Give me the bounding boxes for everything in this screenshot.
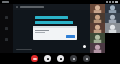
- button[interactable]: Microphone: [44, 55, 51, 62]
- button[interactable]: Participant 1: [90, 4, 105, 13]
- button[interactable]: Confirm: [33, 26, 77, 40]
- button[interactable]: Participant 3: [90, 13, 105, 23]
- button[interactable]: Camera: [57, 55, 64, 62]
- button[interactable]: More options: [83, 55, 90, 62]
- button[interactable]: Participant 4: [105, 13, 120, 23]
- button[interactable]: Share screen: [70, 55, 77, 62]
- button[interactable]: Confirm: [66, 35, 75, 38]
- button[interactable]: Participant 5: [90, 23, 105, 33]
- button[interactable]: Participant 9: [90, 43, 105, 53]
- button[interactable]: End call: [31, 55, 38, 62]
- button[interactable]: Participant 2: [105, 4, 120, 13]
- button[interactable]: Participant 6: [105, 23, 120, 33]
- button[interactable]: Participant 7: [90, 33, 105, 43]
